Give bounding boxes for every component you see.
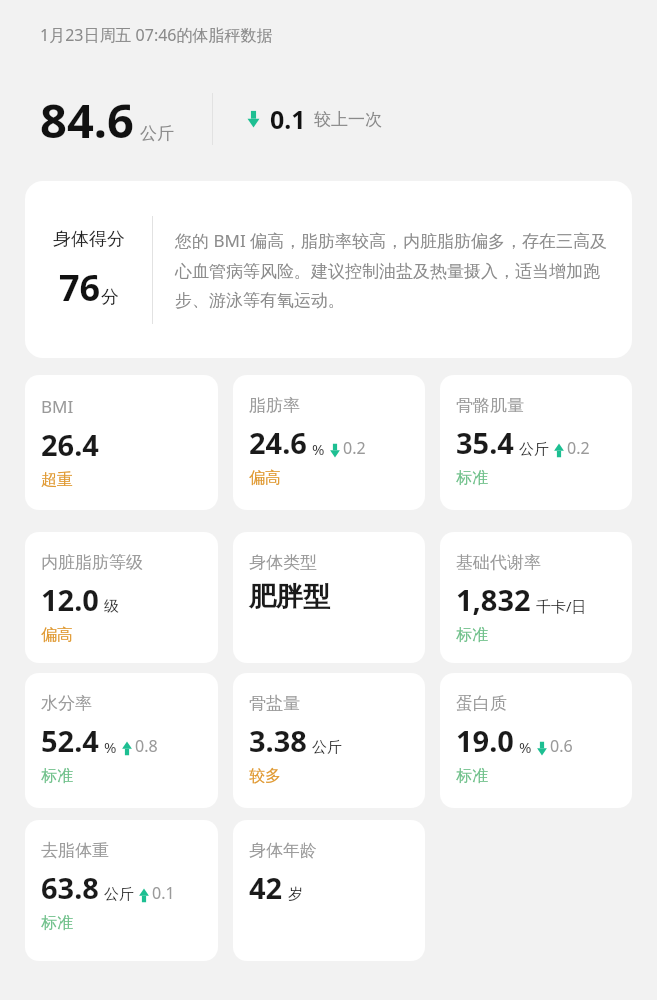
staticText: 0.6 [550,735,573,757]
staticText: 脂肪率 [249,395,300,416]
staticText: 0.8 [135,735,158,757]
button[interactable]: 内脏脂肪等级 [25,532,218,663]
button[interactable]: 身体得分 [25,181,632,358]
staticText: 26.4 [41,425,99,464]
staticText: 肥胖型 [249,580,330,614]
staticText: 63.8 [41,868,99,907]
staticText: 42 [249,868,283,907]
staticText: 0.1 [152,882,175,904]
staticText: 骨骼肌量 [456,395,524,416]
staticText: 标准 [41,913,73,933]
staticText: 标准 [456,766,488,786]
staticText: 您的 BMI 偏高，脂肪率较高，内脏脂肪偏多，存在三高及心血管病等风险。建议控制… [175,229,614,311]
staticText: 3.38 [249,721,307,760]
staticText: 水分率 [41,693,92,714]
staticText: 岁 [288,885,303,904]
button[interactable]: 基础代谢率 [440,532,632,663]
staticText: 19.0 [456,721,514,760]
staticText: 0.1 [270,102,306,136]
staticText: 去脂体重 [41,840,109,861]
staticText: 84.6 [40,88,134,150]
staticText: 基础代谢率 [456,552,541,573]
staticText: 公斤 [104,885,134,904]
staticText: 千卡/日 [536,596,587,616]
staticText: 分 [101,286,119,309]
staticText: 1月23日周五 07:46的体脂秤数据 [40,24,273,46]
staticText: 标准 [456,625,488,645]
staticText: 0.2 [567,437,590,459]
staticText: % [519,737,532,757]
staticText: 24.6 [249,423,307,462]
staticText: 蛋白质 [456,693,507,714]
staticText: 1,832 [456,580,531,619]
staticText: 0.2 [343,437,366,459]
staticText: 身体得分 [53,228,125,251]
button[interactable]: BMI [25,375,218,510]
staticText: 标准 [456,468,488,488]
button[interactable]: 身体类型 [233,532,425,663]
staticText: 超重 [41,470,73,490]
button[interactable]: 骨骼肌量 [440,375,632,510]
staticText: 偏高 [249,468,281,488]
staticText: 52.4 [41,721,99,760]
staticText: 身体年龄 [249,840,317,861]
staticText: 76 [59,263,101,312]
staticText: 公斤 [312,738,342,757]
button[interactable]: 脂肪率 [233,375,425,510]
staticText: 骨盐量 [249,693,300,714]
button[interactable]: 蛋白质 [440,673,632,808]
staticText: % [104,737,117,757]
button[interactable]: 骨盐量 [233,673,425,808]
staticText: % [312,439,325,459]
staticText: 较上一次 [314,109,382,130]
staticText: 偏高 [41,625,73,645]
staticText: 标准 [41,766,73,786]
staticText: 35.4 [456,423,514,462]
button[interactable]: 去脂体重 [25,820,218,961]
staticText: 12.0 [41,580,99,619]
staticText: 身体类型 [249,552,317,573]
button[interactable]: 身体年龄 [233,820,425,961]
staticText: 级 [104,597,119,616]
staticText: 公斤 [519,440,549,459]
staticText: BMI [41,395,74,418]
button[interactable]: 水分率 [25,673,218,808]
staticText: 较多 [249,766,281,786]
staticText: 内脏脂肪等级 [41,552,143,573]
staticText: 公斤 [140,123,174,144]
